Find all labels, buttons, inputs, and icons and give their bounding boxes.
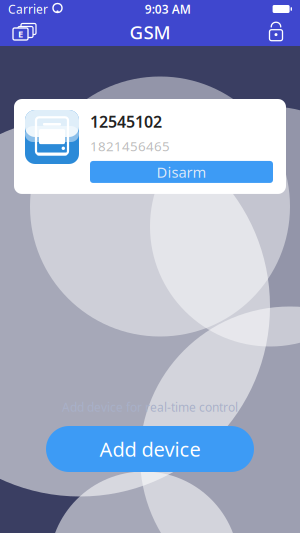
staticText: Add device (99, 436, 200, 462)
staticText: E (18, 28, 23, 40)
staticText: Disarm (156, 162, 206, 182)
button[interactable]: Disarm (90, 161, 273, 183)
button[interactable]: Lock (254, 18, 298, 46)
staticText: Add device for real-time control (62, 399, 238, 415)
staticText: 12545102 (90, 111, 162, 132)
button[interactable]: Add device (46, 426, 254, 472)
staticText: 9:03 AM (145, 1, 191, 17)
button[interactable]: Devices (2, 18, 46, 46)
staticText: GSM (129, 20, 170, 44)
staticText: Carrier (8, 1, 48, 17)
staticText: 1821456465 (90, 137, 170, 155)
